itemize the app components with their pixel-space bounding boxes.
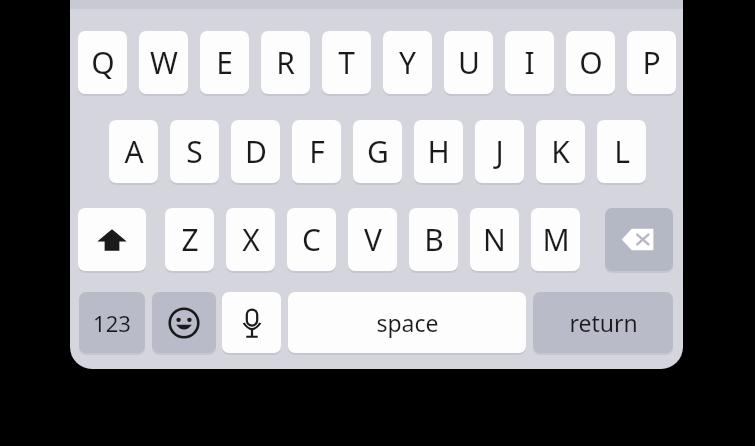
staticText: P bbox=[642, 42, 661, 83]
staticText: V bbox=[364, 219, 382, 260]
staticText: D bbox=[245, 131, 267, 172]
staticText: U bbox=[458, 42, 480, 83]
staticText: O bbox=[579, 42, 603, 83]
button[interactable]: N bbox=[470, 208, 519, 271]
button[interactable]: L bbox=[597, 120, 646, 183]
button[interactable]: G bbox=[353, 120, 402, 183]
staticText: Q bbox=[91, 42, 115, 83]
button[interactable]: Q bbox=[78, 31, 127, 94]
staticText: 123 bbox=[93, 308, 131, 338]
button[interactable]: V bbox=[348, 208, 397, 271]
staticText: R bbox=[276, 42, 295, 83]
staticText: G bbox=[367, 131, 389, 172]
button[interactable]: B bbox=[409, 208, 458, 271]
button[interactable]: X bbox=[226, 208, 275, 271]
button[interactable]: H bbox=[414, 120, 463, 183]
staticText: return bbox=[569, 307, 638, 338]
button[interactable]: A bbox=[109, 120, 158, 183]
button[interactable]: F bbox=[292, 120, 341, 183]
button[interactable]: space bbox=[288, 292, 526, 353]
button[interactable]: Y bbox=[383, 31, 432, 94]
button[interactable]: Emoji bbox=[152, 292, 216, 353]
staticText: L bbox=[614, 131, 630, 172]
button[interactable]: O bbox=[566, 31, 615, 94]
button[interactable]: U bbox=[444, 31, 493, 94]
button[interactable]: W bbox=[139, 31, 188, 94]
staticText: J bbox=[495, 131, 504, 172]
staticText: C bbox=[302, 219, 321, 260]
button[interactable]: 123 bbox=[79, 292, 145, 353]
staticText: X bbox=[242, 219, 260, 260]
button[interactable]: E bbox=[200, 31, 249, 94]
button[interactable]: return bbox=[533, 292, 673, 353]
staticText: space bbox=[376, 307, 439, 338]
button[interactable]: Shift bbox=[78, 208, 146, 271]
staticText: Y bbox=[399, 42, 416, 83]
staticText: H bbox=[427, 131, 450, 172]
staticText: Z bbox=[181, 219, 199, 260]
staticText: W bbox=[150, 42, 178, 83]
button[interactable]: Dictation bbox=[222, 292, 281, 353]
staticText: K bbox=[551, 131, 570, 172]
button[interactable]: Z bbox=[165, 208, 214, 271]
button[interactable]: C bbox=[287, 208, 336, 271]
button[interactable]: K bbox=[536, 120, 585, 183]
button[interactable]: P bbox=[627, 31, 676, 94]
button[interactable]: I bbox=[505, 31, 554, 94]
staticText: T bbox=[338, 42, 355, 83]
button[interactable]: J bbox=[475, 120, 524, 183]
button[interactable]: S bbox=[170, 120, 219, 183]
staticText: I bbox=[524, 42, 535, 83]
button[interactable]: T bbox=[322, 31, 371, 94]
staticText: N bbox=[483, 219, 506, 260]
staticText: M bbox=[542, 219, 570, 260]
staticText: B bbox=[424, 219, 444, 260]
button[interactable]: M bbox=[531, 208, 580, 271]
staticText: S bbox=[186, 131, 203, 172]
button[interactable]: D bbox=[231, 120, 280, 183]
staticText: E bbox=[216, 42, 233, 83]
button[interactable]: R bbox=[261, 31, 310, 94]
button[interactable]: Delete bbox=[605, 208, 673, 271]
staticText: F bbox=[309, 131, 325, 172]
staticText: A bbox=[124, 131, 144, 172]
